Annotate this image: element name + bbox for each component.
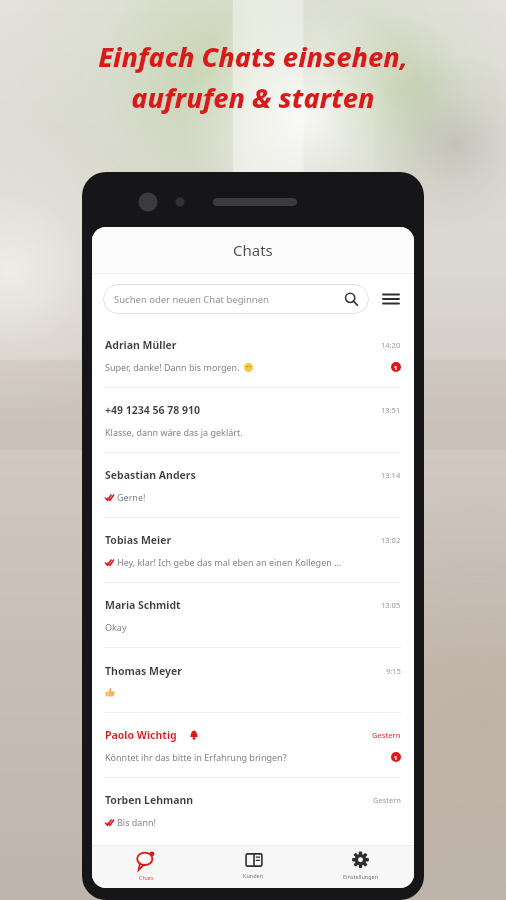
other: Kunden [245, 851, 263, 869]
staticText: 13:14 [381, 470, 401, 480]
staticText: Bis dann! [117, 816, 156, 828]
staticText: 13:51 [381, 405, 401, 415]
staticText: Sebastian Anders [105, 468, 196, 482]
button[interactable]: Menü [379, 287, 403, 311]
button[interactable]: Einstellungen [307, 846, 414, 888]
button[interactable]: Tobias Meier [92, 518, 414, 583]
staticText: Thomas Meyer [105, 664, 182, 678]
staticText: Einfach Chats einsehen, [98, 38, 408, 75]
staticText: Torben Lehmann [105, 793, 194, 807]
staticText: Könntet ihr das bitte in Erfahrung bring… [105, 751, 287, 763]
staticText: 1 [394, 754, 398, 761]
staticText: aufrufen & starten [131, 79, 375, 116]
staticText: Super, danke! Dann bis morgen. [105, 361, 240, 373]
button[interactable]: Torben Lehmann [92, 778, 414, 842]
staticText: 13:05 [381, 600, 401, 610]
staticText: 1 [394, 364, 398, 371]
staticText: Kunden [243, 872, 264, 879]
staticText: 9:15 [386, 666, 401, 676]
staticText: Adrian Müller [105, 338, 177, 352]
button[interactable]: Chats [92, 846, 200, 888]
staticText: 13:02 [381, 535, 401, 545]
staticText: Gerne! [117, 491, 146, 503]
staticText: 14:20 [381, 340, 401, 350]
staticText: Gestern [372, 730, 401, 740]
staticText: Klasse, dann wäre das ja geklärt. [105, 426, 243, 438]
staticText: Okay [105, 621, 127, 633]
staticText: Gestern [373, 795, 401, 805]
staticText: Hey, klar! Ich gebe das mal eben an eine… [117, 556, 342, 568]
staticText: Chats [139, 874, 154, 881]
button[interactable]: Kunden [200, 846, 307, 888]
staticText: Suchen oder neuen Chat beginnen [114, 293, 344, 306]
staticText: Tobias Meier [105, 533, 172, 547]
staticText: Paolo Wichtig [105, 728, 177, 742]
button[interactable]: +49 1234 56 78 910 [92, 388, 414, 453]
button[interactable]: Maria Schmidt [92, 583, 414, 648]
other: Chats [136, 851, 156, 871]
button[interactable]: Sebastian Anders [92, 453, 414, 518]
staticText: +49 1234 56 78 910 [105, 403, 201, 417]
staticText: Maria Schmidt [105, 598, 181, 612]
staticText: Chats [233, 240, 273, 260]
staticText: Einstellungen [343, 873, 379, 880]
button[interactable]: Thomas Meyer [92, 648, 414, 713]
button[interactable]: Adrian Müller [92, 323, 414, 388]
button[interactable]: Suchen oder neuen Chat beginnen [103, 284, 369, 314]
button[interactable]: Paolo Wichtig [92, 713, 414, 778]
other: Einstellungen [351, 851, 370, 870]
